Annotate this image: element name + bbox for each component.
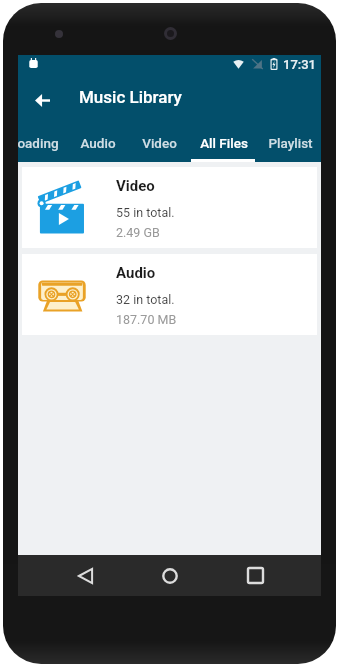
staticText: 17:31 bbox=[283, 57, 316, 72]
button[interactable]: Home bbox=[149, 555, 190, 596]
button[interactable]: Playlist bbox=[258, 127, 322, 162]
staticText: Video bbox=[142, 135, 177, 151]
staticText: Audio bbox=[80, 135, 116, 151]
staticText: 55 in total. bbox=[116, 205, 175, 220]
button[interactable]: Recent apps bbox=[235, 555, 276, 596]
staticText: Video bbox=[116, 177, 155, 195]
staticText: 32 in total. bbox=[116, 292, 175, 307]
staticText: oading bbox=[17, 135, 59, 151]
button[interactable]: Audio bbox=[66, 127, 130, 162]
button[interactable]: Audio bbox=[22, 254, 317, 335]
staticText: Music Library bbox=[79, 87, 182, 107]
staticText: 187.70 MB bbox=[116, 312, 177, 327]
button[interactable]: All Files bbox=[192, 127, 256, 162]
button[interactable]: Video bbox=[127, 127, 191, 162]
staticText: 2.49 GB bbox=[116, 225, 160, 240]
staticText: Audio bbox=[116, 264, 156, 282]
button[interactable]: Video bbox=[22, 167, 317, 248]
button[interactable]: oading bbox=[3, 127, 78, 162]
button[interactable]: Back bbox=[65, 555, 106, 596]
button[interactable]: Back bbox=[24, 82, 60, 118]
staticText: All Files bbox=[200, 135, 248, 151]
staticText: Playlist bbox=[268, 135, 313, 151]
